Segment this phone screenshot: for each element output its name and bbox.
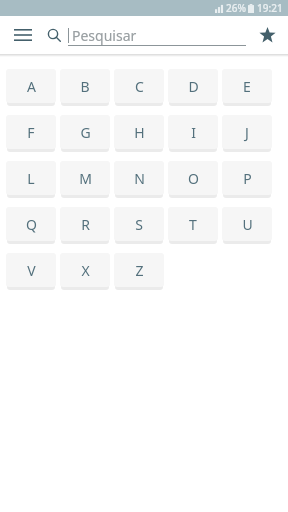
staticText: Z — [135, 261, 144, 280]
staticText: E — [243, 77, 251, 96]
staticText: T — [189, 215, 197, 234]
button[interactable]: Search — [42, 23, 66, 47]
staticText: B — [80, 77, 90, 96]
staticText: S — [135, 215, 143, 234]
button[interactable]: G — [60, 115, 110, 149]
button[interactable]: I — [168, 115, 218, 149]
staticText: C — [135, 77, 144, 96]
button[interactable]: P — [222, 161, 272, 195]
button[interactable]: J — [222, 115, 272, 149]
staticText: L — [27, 169, 35, 188]
staticText: F — [27, 123, 35, 142]
button[interactable]: Q — [6, 207, 56, 241]
staticText: P — [243, 169, 252, 188]
button[interactable]: M — [60, 161, 110, 195]
button[interactable]: F — [6, 115, 56, 149]
button[interactable]: S — [114, 207, 164, 241]
button[interactable]: Z — [114, 253, 164, 287]
staticText: X — [81, 261, 90, 280]
button[interactable]: T — [168, 207, 218, 241]
button[interactable]: A — [6, 69, 56, 103]
staticText: Q — [26, 215, 37, 234]
button[interactable]: L — [6, 161, 56, 195]
staticText: H — [134, 123, 145, 142]
button[interactable]: B — [60, 69, 110, 103]
staticText: R — [81, 215, 90, 234]
button[interactable]: N — [114, 161, 164, 195]
staticText: M — [79, 169, 92, 188]
staticText: I — [191, 123, 196, 142]
staticText: O — [188, 169, 199, 188]
button[interactable]: D — [168, 69, 218, 103]
staticText: U — [242, 215, 253, 234]
button[interactable]: O — [168, 161, 218, 195]
staticText: J — [245, 123, 249, 142]
staticText: A — [27, 77, 36, 96]
staticText: D — [188, 77, 199, 96]
button[interactable]: C — [114, 69, 164, 103]
staticText: G — [80, 123, 91, 142]
button[interactable]: H — [114, 115, 164, 149]
staticText: V — [27, 261, 36, 280]
button[interactable]: V — [6, 253, 56, 287]
staticText: N — [134, 169, 145, 188]
button[interactable]: Menu — [6, 18, 40, 52]
button[interactable]: U — [222, 207, 272, 241]
staticText: Pesquisar — [72, 26, 137, 45]
button[interactable]: Favorites — [250, 18, 284, 52]
staticText: 19:21 — [257, 1, 283, 15]
button[interactable]: R — [60, 207, 110, 241]
button[interactable]: E — [222, 69, 272, 103]
button[interactable]: Pesquisar — [68, 22, 246, 48]
staticText: 26% — [226, 1, 246, 15]
button[interactable]: X — [60, 253, 110, 287]
